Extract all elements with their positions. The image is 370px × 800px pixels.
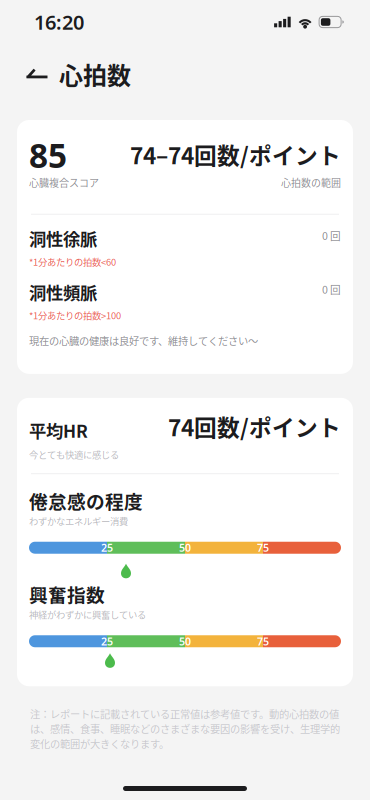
staticText: 今とても快適に感じる <box>29 448 119 461</box>
staticText: 心拍数 <box>59 57 131 91</box>
staticText: 25 <box>101 634 113 648</box>
staticText: 注：レポートに記載されている正常値は参考値です。動的心拍数の値は、感情、食事、睡… <box>30 706 340 751</box>
button[interactable]: Back <box>26 57 59 90</box>
staticText: 興奮指数 <box>29 581 105 608</box>
staticText: わずかなエネルギー消費 <box>29 514 128 528</box>
staticText: 0 回 <box>322 228 341 243</box>
staticText: 85 <box>29 133 67 177</box>
staticText: 25 <box>101 541 113 555</box>
staticText: 50 <box>179 634 191 648</box>
staticText: 心臓複合スコア <box>29 175 99 190</box>
staticText: 倦怠感の程度 <box>29 487 143 514</box>
staticText: 75 <box>257 541 269 555</box>
staticText: 75 <box>257 634 269 648</box>
staticText: *1分あたりの拍数>100 <box>29 308 121 322</box>
staticText: 心拍数の範囲 <box>281 175 341 190</box>
staticText: 洞性頻脈 <box>29 279 97 304</box>
staticText: 洞性徐脈 <box>29 226 97 251</box>
staticText: 神経がわずかに興奮している <box>29 608 146 621</box>
staticText: 0 回 <box>322 281 341 297</box>
staticText: 現在の心臓の健康は良好です、維持してください〜 <box>29 333 258 348</box>
staticText: 16:20 <box>34 9 84 35</box>
staticText: 74回数/ポイント <box>168 410 341 443</box>
staticText: *1分あたりの拍数<60 <box>29 255 116 268</box>
staticText: 74–74回数/ポイント <box>130 138 341 171</box>
staticText: 50 <box>179 541 191 555</box>
staticText: 平均HR <box>29 418 88 443</box>
